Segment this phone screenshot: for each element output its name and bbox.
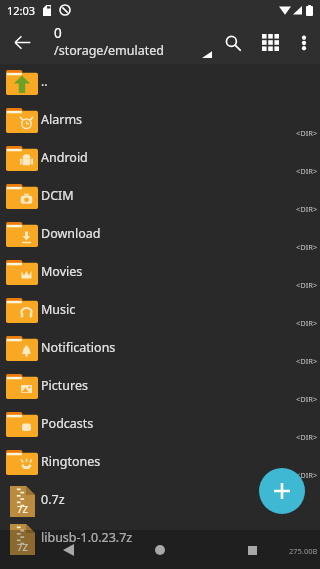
staticText: Pictures — [41, 377, 88, 394]
staticText: <DIR> — [296, 242, 318, 252]
button[interactable]: 7Z — [0, 482, 320, 520]
staticText: 0 — [54, 24, 62, 42]
staticText: <DIR> — [296, 394, 318, 404]
staticText: <DIR> — [296, 166, 318, 176]
staticText: Android — [41, 149, 88, 166]
staticText: DCIM — [41, 187, 74, 204]
staticText: 7Z — [17, 503, 28, 516]
button[interactable]: DCIM — [0, 178, 320, 216]
staticText: <DIR> — [296, 356, 318, 366]
staticText: <DIR> — [296, 128, 318, 138]
staticText: 12:03 — [7, 3, 36, 18]
button[interactable]: Alarms — [0, 102, 320, 140]
button[interactable]: Grid view — [254, 26, 287, 59]
button[interactable]: Ringtones — [0, 444, 320, 482]
button[interactable]: Music — [0, 292, 320, 330]
staticText: Notifications — [41, 339, 116, 356]
button[interactable]: Home — [143, 533, 177, 567]
button[interactable]: Add — [259, 468, 305, 514]
staticText: 7Z — [17, 541, 28, 554]
button[interactable]: Movies — [0, 254, 320, 292]
staticText: Movies — [41, 263, 83, 280]
staticText: <DIR> — [296, 432, 318, 442]
button[interactable]: .. — [0, 64, 320, 102]
button[interactable]: 7Z — [0, 520, 320, 558]
staticText: Music — [41, 301, 76, 318]
staticText: <DIR> — [296, 470, 318, 480]
button[interactable]: Download — [0, 216, 320, 254]
button[interactable]: Android — [0, 140, 320, 178]
button[interactable]: Notifications — [0, 330, 320, 368]
button[interactable]: More options — [287, 26, 320, 59]
button[interactable]: Recents — [235, 533, 269, 567]
staticText: <DIR> — [296, 280, 318, 290]
staticText: /storage/emulated — [54, 42, 164, 59]
button[interactable]: Back — [3, 23, 41, 61]
staticText: 275.00B — [289, 546, 318, 556]
staticText: Download — [41, 225, 101, 242]
staticText: Podcasts — [41, 415, 94, 432]
staticText: <DIR> — [296, 204, 318, 214]
button[interactable]: Search — [216, 26, 249, 59]
staticText: Alarms — [41, 111, 83, 128]
staticText: libusb-1.0.23.7z — [41, 529, 133, 546]
button[interactable]: Back — [51, 533, 85, 567]
button[interactable]: Podcasts — [0, 406, 320, 444]
staticText: <DIR> — [296, 318, 318, 328]
staticText: 0.7z — [41, 491, 65, 508]
staticText: Ringtones — [41, 453, 101, 470]
button[interactable]: Pictures — [0, 368, 320, 406]
staticText: .. — [41, 73, 48, 90]
